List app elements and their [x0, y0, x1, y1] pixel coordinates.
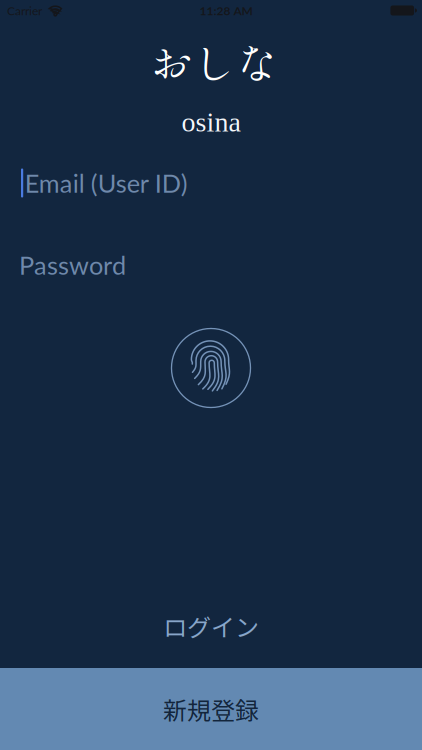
- staticText: Carrier: [7, 3, 42, 18]
- staticText: おしな: [150, 30, 279, 92]
- button[interactable]: Password: [0, 243, 422, 287]
- button[interactable]: Email (User ID): [0, 161, 422, 205]
- staticText: osina: [181, 106, 240, 137]
- staticText: Password: [19, 250, 126, 280]
- button[interactable]: 新規登録: [0, 668, 422, 750]
- staticText: ログイン: [163, 609, 259, 643]
- staticText: 11:28 AM: [199, 3, 252, 18]
- staticText: 新規登録: [163, 692, 259, 726]
- staticText: Email (User ID): [25, 168, 188, 198]
- button[interactable]: Touch ID: [171, 328, 250, 407]
- button[interactable]: ログイン: [0, 602, 422, 650]
